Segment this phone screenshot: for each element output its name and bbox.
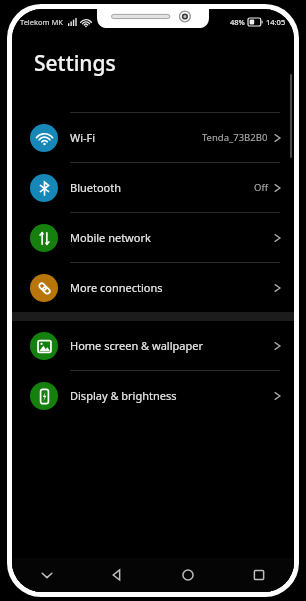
button[interactable]: Mobile network — [12, 213, 294, 262]
staticText: Settings — [34, 49, 116, 78]
button[interactable]: Recents — [223, 558, 294, 592]
button[interactable]: Bluetooth — [12, 163, 294, 212]
staticText: 14:05 — [266, 17, 286, 27]
button[interactable]: Back — [82, 558, 152, 592]
staticText: Home screen & wallpaper — [70, 338, 203, 353]
button[interactable]: Display & brightness — [12, 371, 294, 420]
staticText: Mobile network — [70, 230, 151, 245]
staticText: Wi-Fi — [70, 130, 96, 145]
staticText: Bluetooth — [70, 180, 122, 195]
staticText: Off — [254, 181, 268, 194]
button[interactable]: Hide keyboard — [12, 558, 82, 592]
staticText: 48% — [230, 17, 245, 27]
button[interactable]: More connections — [12, 263, 294, 312]
staticText: Display & brightness — [70, 388, 177, 403]
staticText: Telekom MK — [20, 17, 63, 27]
staticText: Tenda_73B2B0 — [202, 131, 268, 144]
button[interactable]: Home screen & wallpaper — [12, 321, 294, 370]
button[interactable]: Wi-Fi — [12, 113, 294, 162]
staticText: More connections — [70, 280, 163, 295]
button[interactable]: Home — [152, 558, 223, 592]
